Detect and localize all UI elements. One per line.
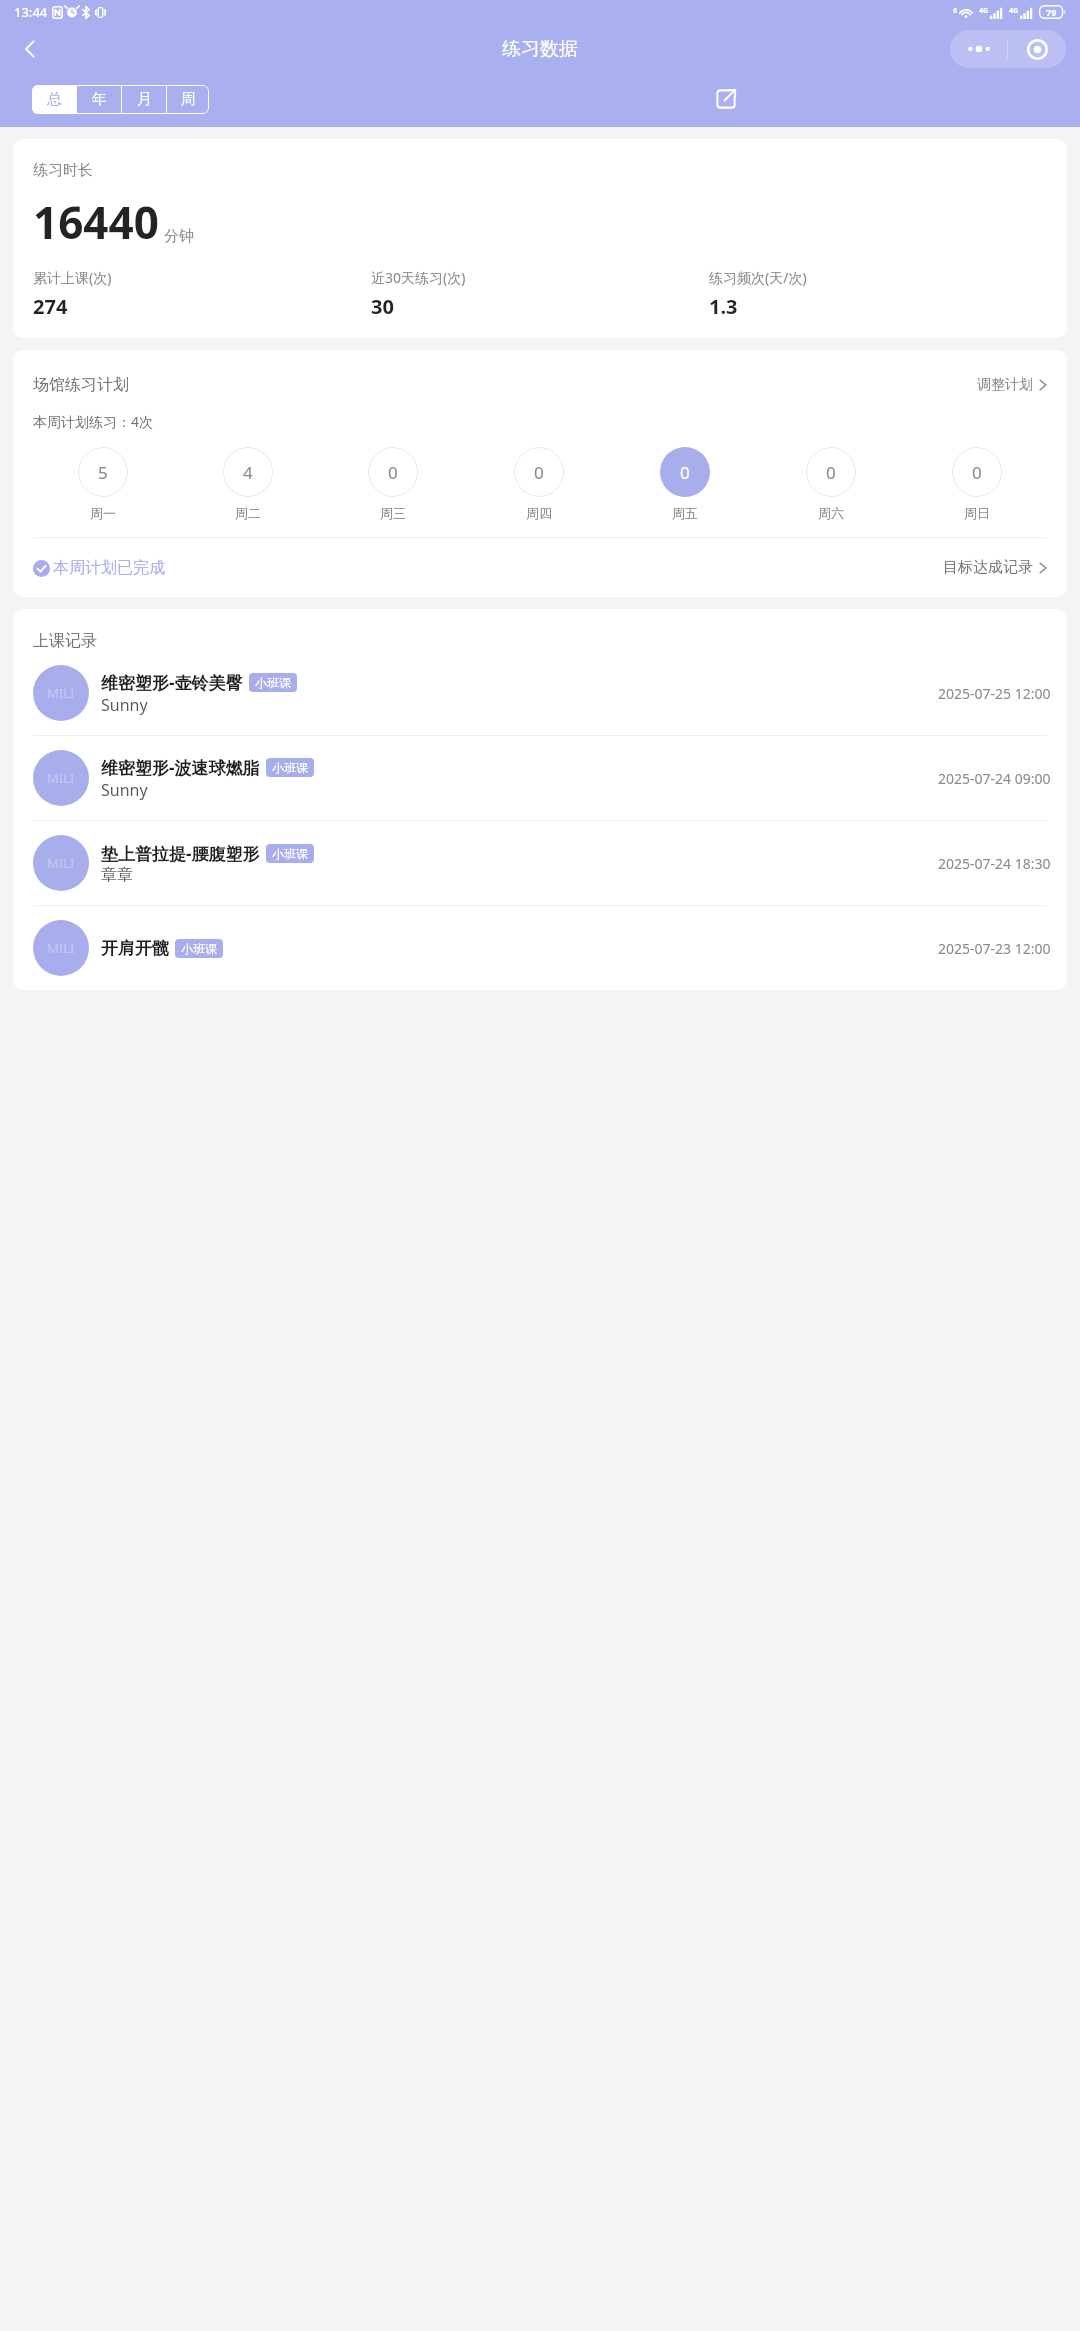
staticText: 小班课 [272,760,308,775]
staticText: 30 [371,293,394,320]
staticText: MILI [47,684,75,702]
staticText: 0 [388,461,398,484]
staticText: 0 [972,461,982,484]
staticText: 目标达成记录 [943,558,1033,577]
staticText: 垫上普拉提-腰腹塑形 [101,842,260,865]
staticText: 练习频次(天/次) [709,268,807,287]
staticText: 开肩开髋 [101,938,169,959]
staticText: 6 [953,6,958,16]
staticText: 0 [680,461,690,484]
staticText: 0 [534,461,544,484]
staticText: 4 [243,461,253,484]
staticText: 本周计划练习：4次 [33,412,154,431]
button[interactable]: MILI [13,651,1067,735]
staticText: 调整计划 [977,376,1033,394]
staticText: 4G [1009,6,1019,16]
button[interactable]: 0 [320,447,466,521]
button[interactable]: 0 [904,447,1050,521]
button[interactable]: 练习时长 [13,139,1067,338]
staticText: 周四 [526,505,552,521]
staticText: Sunny [101,694,148,716]
staticText: 上课记录 [33,631,97,651]
staticText: 累计上课(次) [33,268,112,287]
staticText: 周一 [90,505,116,521]
staticText: 79 [1046,6,1057,18]
staticText: MILI [47,939,75,957]
staticText: 维密塑形-波速球燃脂 [101,756,260,779]
staticText: 2025-07-23 12:00 [938,939,1051,958]
button[interactable]: MILI [13,736,1067,820]
staticText: 总 [47,90,62,109]
button[interactable]: Share [706,79,746,119]
staticText: 16440 [33,192,159,252]
button[interactable]: 总 [32,85,76,114]
button[interactable]: 本周计划已完成 [33,558,165,578]
button[interactable]: 4 [175,447,320,521]
staticText: 维密塑形-壶铃美臀 [101,671,243,694]
staticText: 小班课 [272,846,308,861]
staticText: 小班课 [255,675,291,690]
staticText: 13:44 [14,3,48,21]
button[interactable]: Menu and close [950,30,1066,68]
staticText: 周五 [672,505,698,521]
staticText: 周日 [964,505,990,521]
button[interactable]: 年 [77,85,121,114]
staticText: 周六 [818,505,844,521]
staticText: 周二 [235,505,261,521]
staticText: MILI [47,769,75,787]
staticText: 年 [92,90,107,109]
staticText: 练习时长 [33,161,93,180]
staticText: 小班课 [181,941,217,956]
button[interactable]: 月 [122,85,166,114]
staticText: 月 [137,90,152,109]
button[interactable]: Back [8,27,52,71]
staticText: 近30天练习(次) [371,268,466,287]
staticText: 274 [33,293,68,320]
staticText: 0 [826,461,836,484]
staticText: Sunny [101,779,148,801]
staticText: 章章 [101,865,133,885]
button[interactable]: 5 [30,447,175,521]
button[interactable]: MILI [13,821,1067,905]
staticText: 周 [181,90,196,109]
button[interactable]: 0 [758,447,904,521]
staticText: 场馆练习计划 [33,375,129,395]
staticText: 2025-07-24 18:30 [938,854,1051,873]
staticText: 2025-07-24 09:00 [938,769,1051,788]
button[interactable]: 0 [612,447,758,521]
button[interactable]: 调整计划 [973,372,1051,398]
staticText: 练习数据 [502,37,578,61]
button[interactable]: 周 [167,85,209,114]
staticText: 分钟 [164,227,194,246]
staticText: 本周计划已完成 [53,558,165,578]
staticText: MILI [47,854,75,872]
staticText: 周三 [380,505,406,521]
staticText: 2025-07-25 12:00 [938,684,1051,703]
staticText: 1.3 [709,293,738,320]
button[interactable]: 目标达成记录 [939,554,1051,581]
staticText: 5 [98,461,108,484]
button[interactable]: MILI [13,906,1067,990]
button[interactable]: 0 [466,447,612,521]
staticText: 4G [979,6,989,16]
